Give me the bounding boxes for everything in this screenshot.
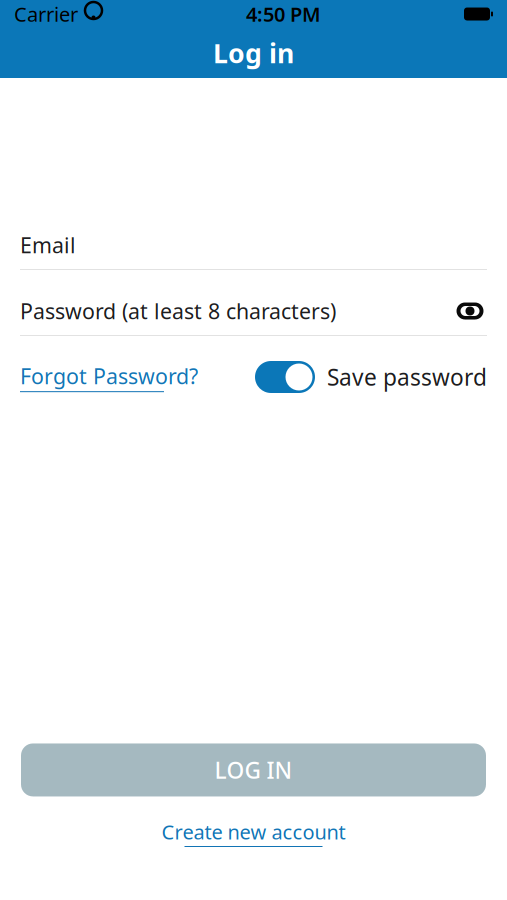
staticText: LOG IN bbox=[214, 755, 292, 785]
staticText: Create new account bbox=[161, 818, 345, 845]
staticText: Email bbox=[20, 231, 76, 259]
button[interactable]: Forgot Password? bbox=[20, 362, 198, 392]
staticText: Password (at least 8 characters) bbox=[20, 297, 336, 325]
staticText: Save password bbox=[327, 362, 487, 392]
button[interactable]: LOG IN bbox=[21, 743, 486, 796]
staticText: Carrier bbox=[14, 1, 78, 27]
button[interactable]: Save password bbox=[255, 361, 487, 393]
staticText: Forgot Password? bbox=[20, 362, 198, 390]
button[interactable]: Create new account bbox=[161, 818, 345, 847]
staticText: Log in bbox=[213, 35, 294, 71]
staticText: 4:50 PM bbox=[246, 1, 321, 27]
button[interactable]: Show password bbox=[453, 294, 487, 328]
